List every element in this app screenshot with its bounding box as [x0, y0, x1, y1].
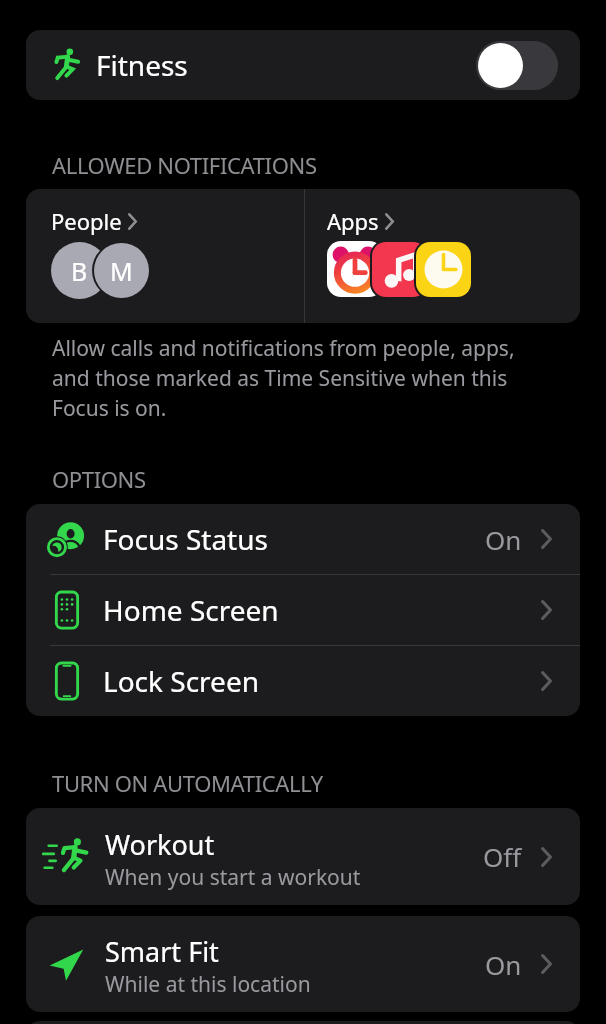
staticText: Off [483, 839, 522, 874]
button[interactable] [26, 1021, 580, 1024]
staticText: Focus Status [103, 520, 268, 558]
staticText: People [51, 206, 122, 236]
staticText: Home Screen [103, 591, 279, 629]
button[interactable]: Apps [305, 189, 580, 323]
button[interactable]: Fitness [26, 30, 580, 100]
staticText: When you start a workout [105, 863, 361, 892]
staticText: Workout [105, 826, 215, 863]
staticText: Fitness [96, 46, 188, 84]
staticText: Lock Screen [103, 662, 259, 700]
staticText: Apps [327, 206, 379, 236]
staticText: While at this location [105, 970, 311, 999]
staticText: TURN ON AUTOMATICALLY [52, 768, 323, 798]
staticText: On [485, 947, 522, 982]
button[interactable]: Lock Screen [26, 646, 580, 716]
staticText: M [110, 254, 133, 288]
button[interactable]: People [26, 189, 304, 323]
button[interactable]: Focus Status [26, 504, 580, 574]
staticText: Allow calls and notifications from peopl… [52, 334, 522, 422]
button[interactable]: Home Screen [26, 575, 580, 645]
button[interactable]: Enable Fitness Focus [476, 41, 558, 90]
staticText: B [71, 254, 88, 288]
staticText: OPTIONS [52, 464, 146, 494]
button[interactable]: Smart Fit [26, 916, 580, 1012]
button[interactable]: Workout [26, 808, 580, 905]
staticText: ALLOWED NOTIFICATIONS [52, 150, 317, 180]
staticText: Smart Fit [105, 933, 219, 970]
staticText: On [485, 522, 522, 557]
